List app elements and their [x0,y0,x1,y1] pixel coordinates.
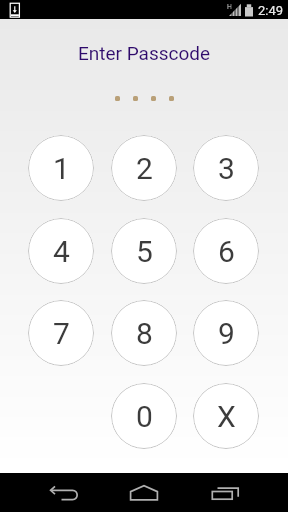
button[interactable]: 8 [111,300,177,366]
staticText: 0 [136,399,153,434]
staticText: 3 [218,151,235,186]
staticText: 7 [53,316,70,351]
button[interactable]: 1 [28,135,94,201]
button[interactable]: 4 [28,218,94,284]
button[interactable]: Recents [194,473,288,512]
staticText: 6 [218,234,235,269]
staticText: 8 [136,316,153,351]
staticText: 2 [136,151,153,186]
button[interactable]: X [193,383,259,449]
staticText: H [227,3,232,11]
button[interactable]: Back [14,473,94,512]
button[interactable]: 9 [193,300,259,366]
staticText: 1 [53,151,70,186]
staticText: X [217,399,236,434]
button[interactable]: Home [100,473,188,512]
button[interactable]: 2 [111,135,177,201]
other: Download [10,3,20,18]
staticText: 5 [136,234,153,269]
button[interactable]: 7 [28,300,94,366]
staticText: Enter Passcode [78,42,211,64]
button[interactable]: 6 [193,218,259,284]
button[interactable]: 5 [111,218,177,284]
staticText: 9 [218,316,235,351]
staticText: 2:49 [258,3,284,18]
button[interactable]: 3 [193,135,259,201]
button[interactable]: 0 [111,383,177,449]
staticText: 4 [53,234,70,269]
